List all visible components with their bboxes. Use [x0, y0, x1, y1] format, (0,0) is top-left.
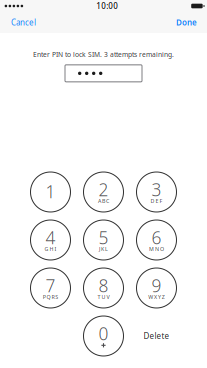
staticText: T: [98, 293, 101, 301]
button[interactable]: 4: [30, 220, 70, 260]
staticText: R: [51, 293, 54, 301]
staticText: F: [159, 197, 162, 205]
staticText: E: [155, 197, 158, 205]
staticText: C: [106, 197, 109, 205]
button[interactable]: 0: [83, 316, 123, 356]
staticText: D: [151, 197, 155, 205]
staticText: X: [154, 293, 157, 301]
staticText: P: [43, 293, 46, 301]
staticText: Done: [176, 17, 197, 28]
staticText: K: [101, 245, 104, 253]
button[interactable]: Cancel: [0, 12, 47, 33]
staticText: 1: [45, 180, 55, 203]
staticText: Q: [46, 293, 50, 301]
button[interactable]: 6: [136, 220, 176, 260]
button[interactable]: 9: [136, 268, 176, 308]
staticText: L: [105, 245, 108, 253]
staticText: 3: [151, 178, 161, 201]
staticText: 2: [98, 178, 108, 201]
button[interactable]: 8: [83, 268, 123, 308]
button[interactable]: Delete: [136, 316, 176, 356]
staticText: Cancel: [11, 17, 36, 28]
staticText: Y: [158, 293, 161, 301]
staticText: W: [148, 293, 153, 301]
staticText: N: [155, 245, 159, 253]
staticText: M: [149, 245, 154, 253]
staticText: U: [101, 293, 105, 301]
staticText: V: [106, 293, 109, 301]
staticText: Z: [162, 293, 165, 301]
button[interactable]: Done: [166, 12, 207, 33]
button[interactable]: 5: [83, 220, 123, 260]
staticText: 10:00: [96, 1, 118, 11]
staticText: 8: [98, 274, 108, 297]
staticText: 9: [151, 274, 161, 297]
staticText: I: [54, 245, 56, 253]
staticText: 0: [98, 322, 108, 345]
button[interactable]: 7: [30, 268, 70, 308]
staticText: 6: [151, 226, 161, 249]
staticText: A: [98, 197, 101, 205]
staticText: J: [99, 245, 100, 253]
button[interactable]: 2: [83, 172, 123, 212]
staticText: S: [55, 293, 58, 301]
staticText: H: [49, 245, 53, 253]
staticText: O: [160, 245, 164, 253]
staticText: Delete: [143, 331, 169, 341]
staticText: G: [45, 245, 49, 253]
button[interactable]: 1: [30, 172, 70, 212]
staticText: 7: [45, 274, 55, 297]
staticText: Enter PIN to lock SIM. 3 attempts remain…: [33, 50, 174, 59]
button[interactable]: 3: [136, 172, 176, 212]
staticText: 5: [98, 226, 108, 249]
staticText: B: [102, 197, 105, 205]
staticText: 4: [45, 226, 55, 249]
